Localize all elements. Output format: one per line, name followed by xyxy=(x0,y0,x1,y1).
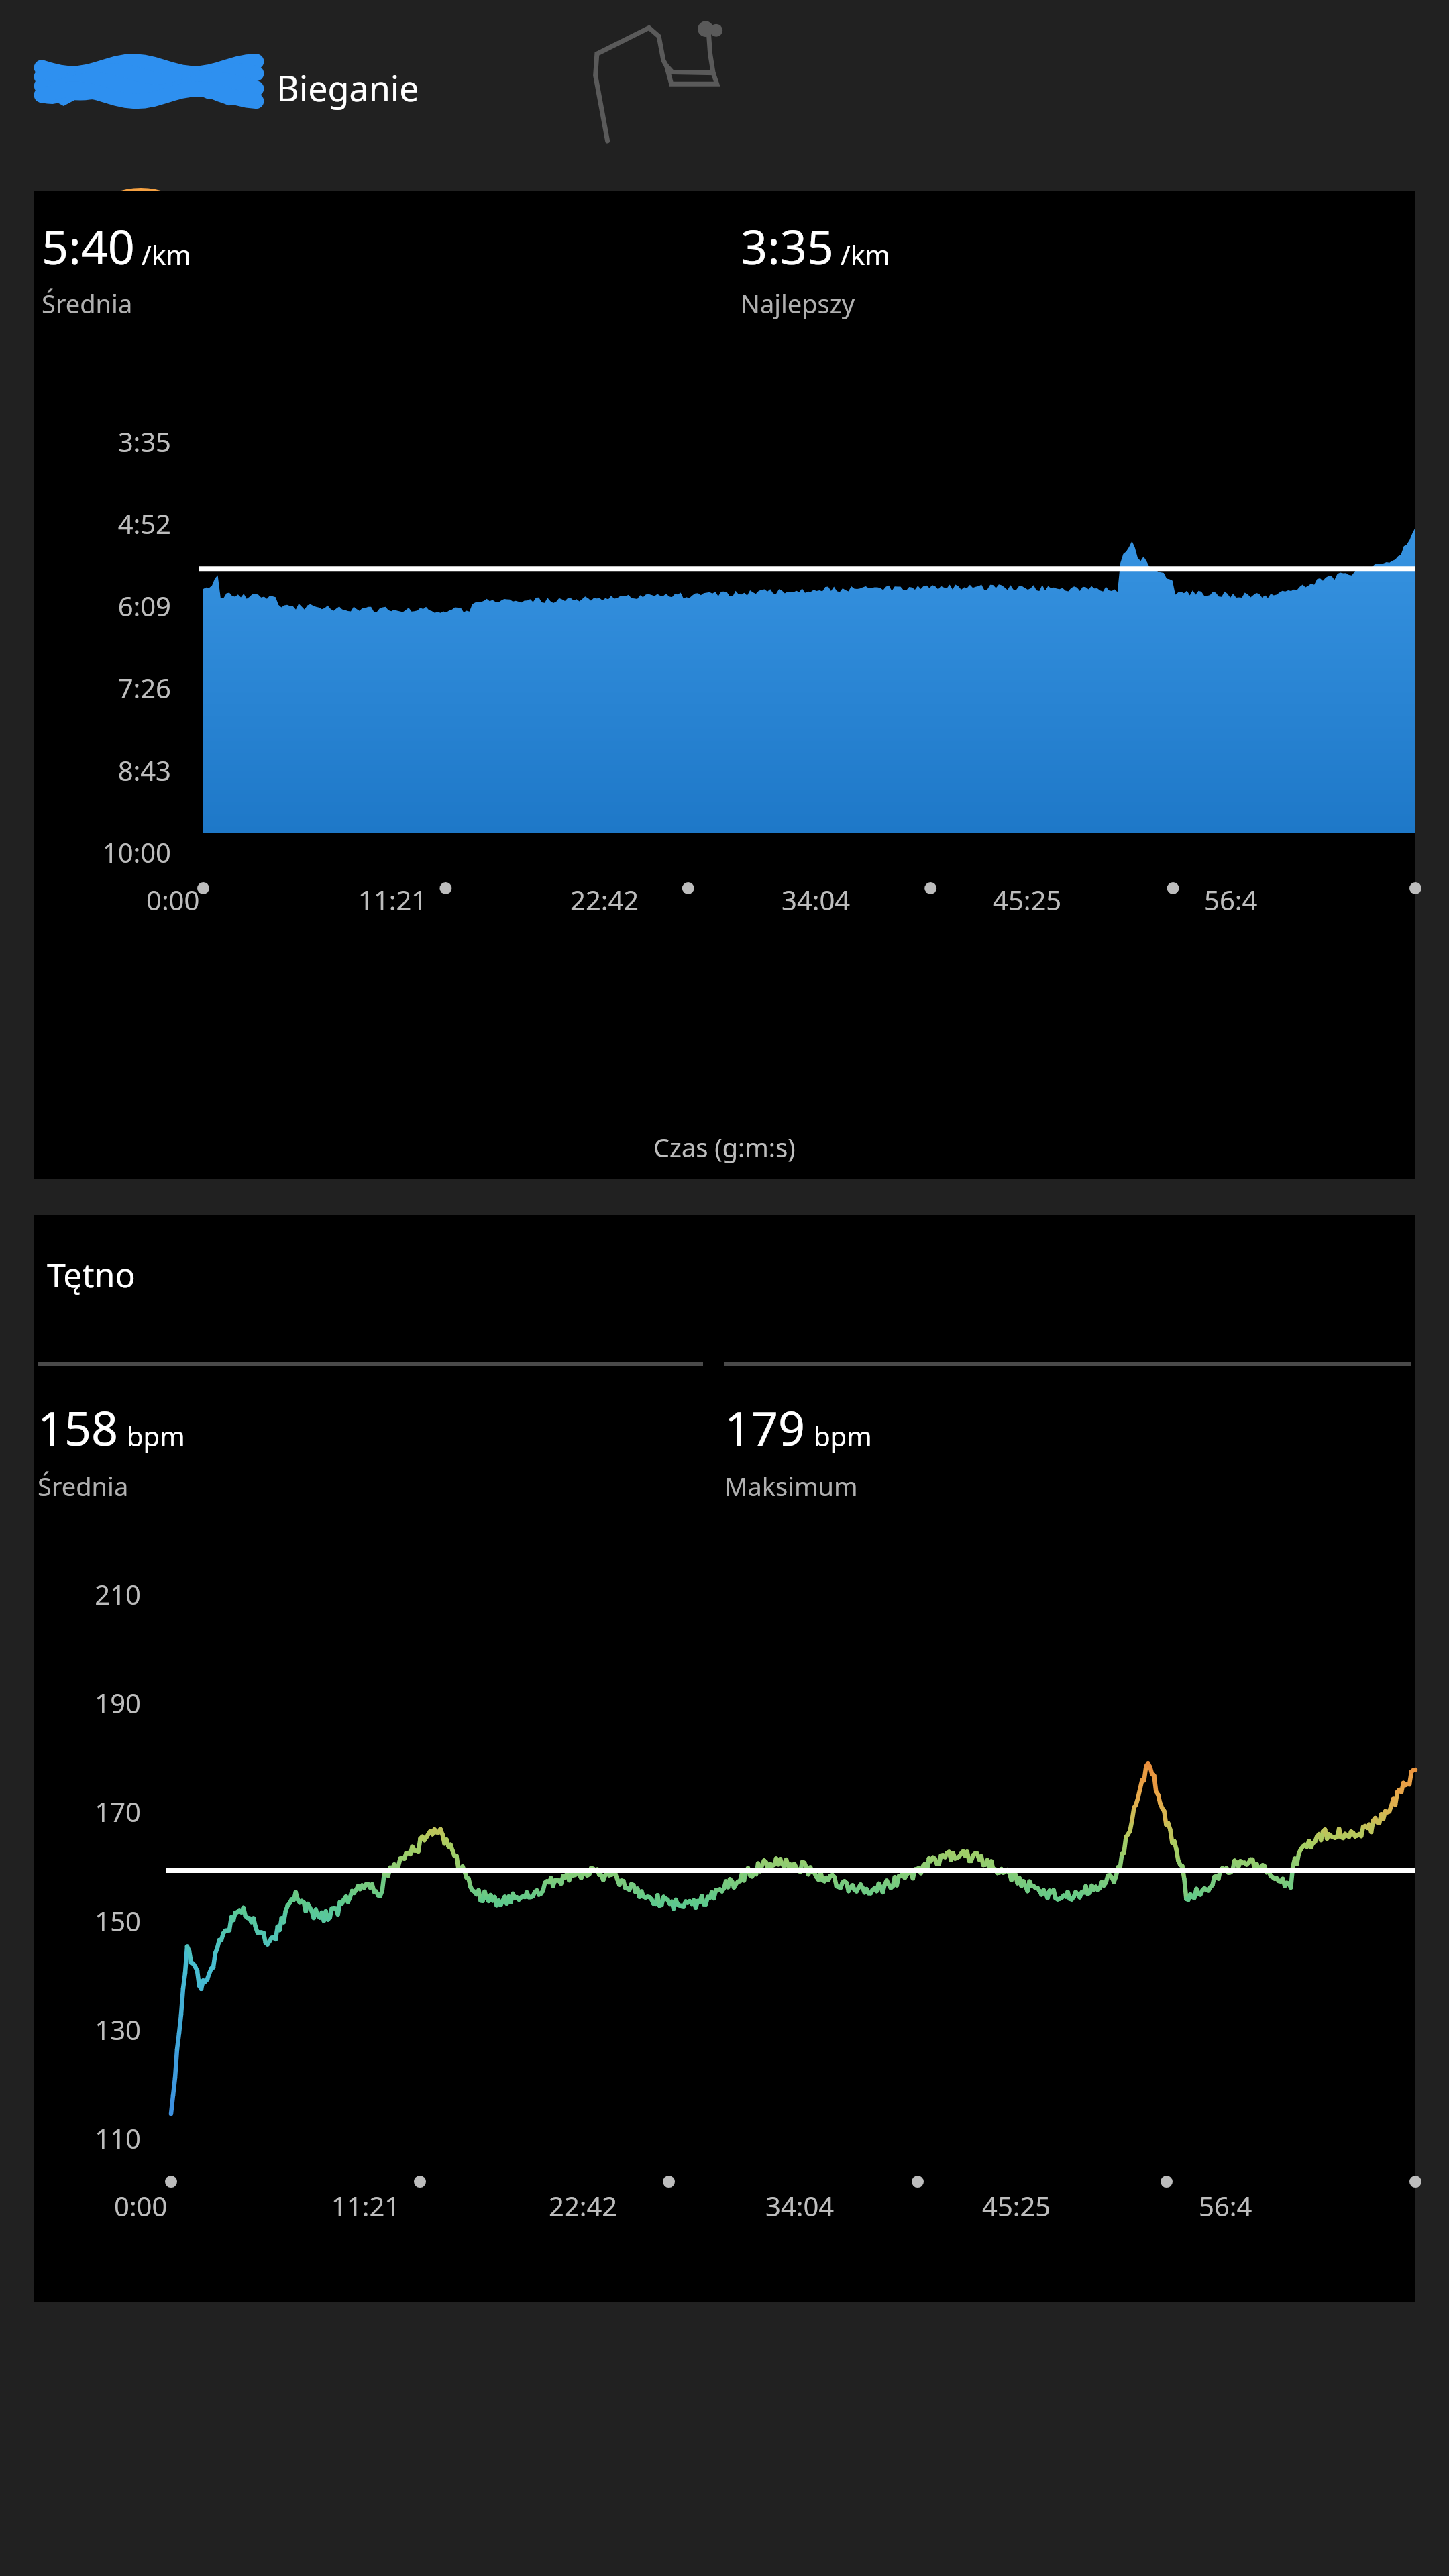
staticText: 158 xyxy=(38,1395,119,1459)
staticText: 34:04 xyxy=(765,2188,835,2224)
staticText: 190 xyxy=(40,1684,141,1721)
staticText: 10:00 xyxy=(54,834,171,870)
staticText: 0:00 xyxy=(146,881,200,918)
staticText: 11:21 xyxy=(358,881,427,918)
staticText: Maksimum xyxy=(724,1468,858,1503)
staticText: bpm xyxy=(127,1417,185,1454)
staticText: /km xyxy=(142,236,191,272)
staticText: 150 xyxy=(40,1902,141,1939)
staticText: 179 xyxy=(724,1395,806,1459)
staticText: 170 xyxy=(40,1793,141,1829)
staticText: Średnia xyxy=(38,1468,129,1503)
staticText: 56:4 xyxy=(1204,881,1258,918)
staticText: 3:35 xyxy=(54,423,171,460)
staticText: 0:00 xyxy=(114,2188,168,2224)
staticText: 5:40 xyxy=(42,214,135,278)
staticText: 22:42 xyxy=(549,2188,618,2224)
staticText: 210 xyxy=(40,1576,141,1612)
staticText: Średnia xyxy=(42,286,133,321)
staticText: Bieganie xyxy=(276,64,419,111)
staticText: 130 xyxy=(40,2011,141,2047)
staticText: 3:35 xyxy=(741,214,834,278)
staticText: 56:4 xyxy=(1199,2188,1252,2224)
button[interactable]: 5:40 xyxy=(34,191,1415,1179)
staticText: 7:26 xyxy=(54,669,171,706)
staticText: 8:43 xyxy=(54,752,171,788)
staticText: Najlepszy xyxy=(741,286,855,321)
staticText: 22:42 xyxy=(570,881,639,918)
staticText: 110 xyxy=(40,2120,141,2156)
staticText: 34:04 xyxy=(782,881,851,918)
other: Running activity xyxy=(67,188,215,335)
staticText: Tętno xyxy=(47,1252,136,1297)
staticText: 6:09 xyxy=(54,588,171,624)
staticText: 45:25 xyxy=(982,2188,1051,2224)
staticText: 45:25 xyxy=(993,881,1062,918)
staticText: 4:52 xyxy=(54,505,171,541)
staticText: /km xyxy=(841,236,890,272)
other: Route map xyxy=(574,10,724,141)
button[interactable]: Tętno xyxy=(34,1215,1415,2302)
staticText: bpm xyxy=(814,1417,872,1454)
staticText: Czas (g:m:s) xyxy=(653,1130,796,1165)
staticText: 11:21 xyxy=(331,2188,400,2224)
